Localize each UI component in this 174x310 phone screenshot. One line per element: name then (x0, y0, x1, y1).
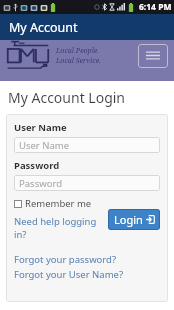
staticText: Password (19, 177, 62, 190)
button[interactable]: Open navigation menu (138, 44, 168, 68)
staticText: 6:14 PM (139, 1, 172, 13)
button[interactable]: Login (108, 209, 160, 230)
staticText: Local People. (56, 46, 99, 56)
staticText: Login (114, 212, 143, 227)
staticText: Password (14, 159, 60, 172)
button[interactable]: Forgot your password? (14, 253, 117, 266)
button[interactable]: Forgot your User Name? (14, 268, 124, 281)
button[interactable]: Password (14, 175, 160, 191)
staticText: My Account (9, 19, 78, 36)
staticText: User Name (19, 139, 70, 152)
staticText: Remember me (25, 197, 92, 210)
staticText: User Name (14, 121, 67, 134)
button[interactable]: User Name (14, 137, 160, 153)
staticText: Local Service. (56, 56, 101, 66)
button[interactable]: Need help logging in? (14, 215, 108, 241)
button[interactable]: Remember me (14, 197, 92, 210)
staticText: My Account Login (8, 88, 126, 107)
